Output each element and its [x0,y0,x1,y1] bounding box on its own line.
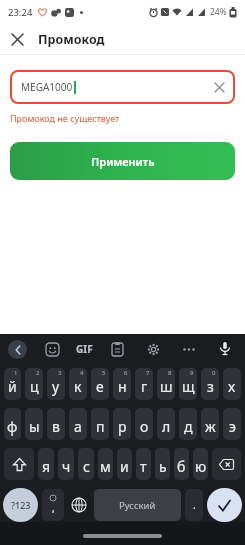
button[interactable] [141,337,165,361]
staticText: MEGA1000 [21,80,73,94]
button[interactable] [105,337,129,361]
staticText: а [74,417,82,436]
staticText: . [193,498,196,512]
staticText: ю [195,457,207,476]
staticText: ф [7,417,18,436]
button[interactable]: GIF [76,342,93,356]
staticText: 0 [212,369,216,377]
button[interactable]: ы [25,408,43,440]
staticText: 23:24 [8,6,33,19]
button[interactable] [40,337,64,361]
button[interactable]: л [157,408,175,440]
staticText: щ [182,377,195,396]
staticText: ц [30,377,39,396]
button[interactable] [4,448,34,480]
button[interactable]: и [117,448,132,480]
button[interactable]: н [113,368,131,400]
button[interactable]: т [136,448,151,480]
staticText: 7 [146,369,150,377]
staticText: й [8,377,17,396]
button[interactable]: ш [157,368,175,400]
button[interactable]: в [47,408,65,440]
staticText: т [140,457,147,476]
button[interactable] [68,489,90,521]
staticText: с [83,457,90,476]
button[interactable]: я [38,448,54,480]
staticText: б [177,457,186,476]
button[interactable] [8,340,27,359]
staticText: л [162,417,171,436]
staticText: м [100,457,111,476]
button[interactable] [213,337,237,361]
button[interactable]: п [91,408,109,440]
button[interactable]: . [185,489,203,521]
staticText: 5 [102,369,106,377]
button[interactable] [6,28,28,50]
staticText: 4 [80,369,84,377]
staticText: и [120,457,129,476]
staticText: 9 [190,369,194,377]
button[interactable] [207,488,242,522]
staticText: 2 [36,369,40,377]
staticText: Промокод [38,31,105,48]
staticText: о [140,417,149,436]
staticText: Промокод не существует [10,112,120,124]
button[interactable]: ю [193,448,208,480]
button[interactable]: щ [179,368,197,400]
staticText: я [42,457,51,476]
button[interactable]: д [179,408,197,440]
button[interactable]: к [69,368,87,400]
button[interactable]: ф [4,408,21,440]
staticText: 3 [58,369,62,377]
staticText: Русский [119,499,156,512]
staticText: ?123 [11,499,31,511]
staticText: к [74,377,82,396]
button[interactable]: з [201,368,219,400]
button[interactable] [212,448,241,480]
staticText: г [141,377,148,396]
button[interactable]: ь [155,448,170,480]
staticText: е [96,377,104,396]
staticText: GIF [76,342,93,356]
staticText: 8 [168,369,172,377]
button[interactable]: й [4,368,21,400]
staticText: э [229,417,236,436]
button[interactable]: , [42,489,64,521]
staticText: , [52,501,55,515]
button[interactable]: б [174,448,189,480]
button[interactable]: ?123 [3,488,38,522]
button[interactable] [215,83,224,92]
button[interactable] [177,337,201,361]
staticText: ь [159,457,167,476]
staticText: х [228,377,236,396]
staticText: ш [160,377,173,396]
staticText: н [118,377,127,396]
button[interactable]: у [47,368,65,400]
button[interactable]: е [91,368,109,400]
button[interactable]: г [135,368,153,400]
button[interactable]: ч [58,448,74,480]
button[interactable]: х [223,368,241,400]
staticText: п [96,417,105,436]
staticText: 6 [124,369,128,377]
button[interactable]: р [113,408,131,440]
button[interactable]: э [223,408,241,440]
button[interactable]: MEGA1000 [10,70,235,104]
staticText: Применить [91,154,155,169]
button[interactable]: Применить [10,142,235,180]
button[interactable]: м [98,448,113,480]
staticText: ч [62,457,71,476]
button[interactable]: о [135,408,153,440]
button[interactable]: ж [201,408,219,440]
staticText: ы [29,417,40,436]
staticText: в [52,417,60,436]
button[interactable]: Русский [94,489,181,521]
staticText: д [184,417,193,436]
button[interactable]: а [69,408,87,440]
button[interactable]: ц [25,368,43,400]
staticText: у [52,377,60,396]
staticText: р [118,417,127,436]
staticText: ж [205,417,216,436]
button[interactable]: с [78,448,94,480]
staticText: з [207,377,214,396]
